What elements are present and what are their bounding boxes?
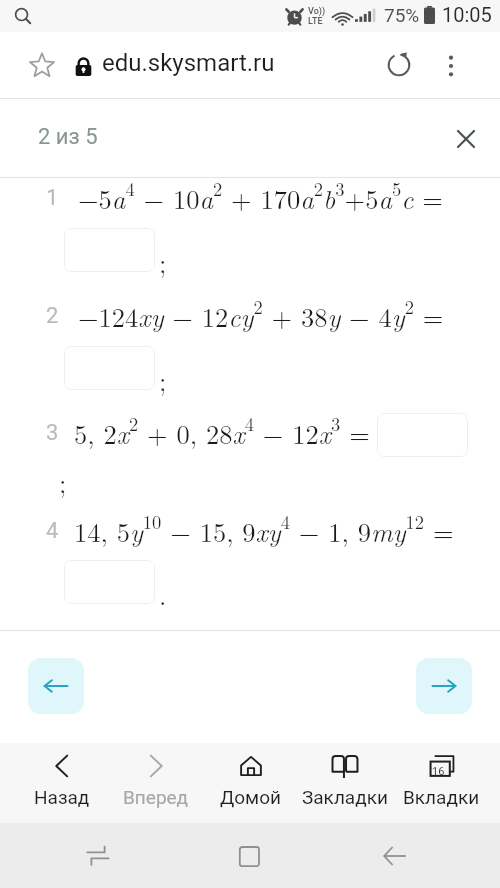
button[interactable]: Закрыть xyxy=(450,123,482,155)
button[interactable]: Обновить xyxy=(382,48,416,82)
staticText: Домой xyxy=(220,786,282,808)
staticText: ; xyxy=(159,361,167,399)
button[interactable]: Поле ответа xyxy=(377,413,468,457)
staticText: Вкладки xyxy=(403,786,480,808)
button[interactable]: Вперед xyxy=(109,743,203,823)
button[interactable]: Главный экран xyxy=(235,841,265,871)
button[interactable]: Поле ответа xyxy=(64,346,155,390)
button[interactable]: Недавние приложения xyxy=(83,841,113,871)
staticText: ; xyxy=(59,463,67,501)
staticText: 10:05 xyxy=(442,3,492,26)
staticText: 14, 5y10 − 15, 9xy4 − 1, 9my12 = xyxy=(74,508,454,550)
button[interactable]: 16 xyxy=(394,743,488,823)
staticText: edu.skysmart.ru xyxy=(102,49,275,77)
button[interactable]: Следующее задание xyxy=(416,658,472,714)
staticText: Назад xyxy=(34,786,90,808)
staticText: Закладки xyxy=(302,786,388,808)
staticText: Vo)) LTE xyxy=(308,6,326,26)
button[interactable]: Домой xyxy=(204,743,298,823)
staticText: 3 xyxy=(46,420,59,446)
staticText: 16 xyxy=(432,765,445,778)
staticText: −5a4 − 10a2 + 170a2b3+5a5c = xyxy=(78,175,443,217)
staticText: . xyxy=(159,575,167,613)
staticText: 2 из 5 xyxy=(38,124,98,150)
staticText: ; xyxy=(159,243,167,281)
staticText: 5, 2x2 + 0, 28x4 − 12x3 = xyxy=(74,410,370,452)
button[interactable]: Поле ответа xyxy=(64,228,155,272)
staticText: −124xy − 12cy2 + 38y − 4y2 = xyxy=(78,293,444,335)
button[interactable]: Назад xyxy=(15,743,109,823)
staticText: 1 xyxy=(46,185,59,211)
button[interactable]: Поле ответа xyxy=(64,560,155,604)
staticText: 4 xyxy=(46,518,59,544)
staticText: 2 xyxy=(46,303,59,329)
staticText: Вперед xyxy=(123,786,189,808)
staticText: 75% xyxy=(384,4,420,26)
button[interactable]: Назад xyxy=(380,841,410,871)
button[interactable]: Закладки xyxy=(298,743,392,823)
button[interactable]: Предыдущее задание xyxy=(28,658,84,714)
